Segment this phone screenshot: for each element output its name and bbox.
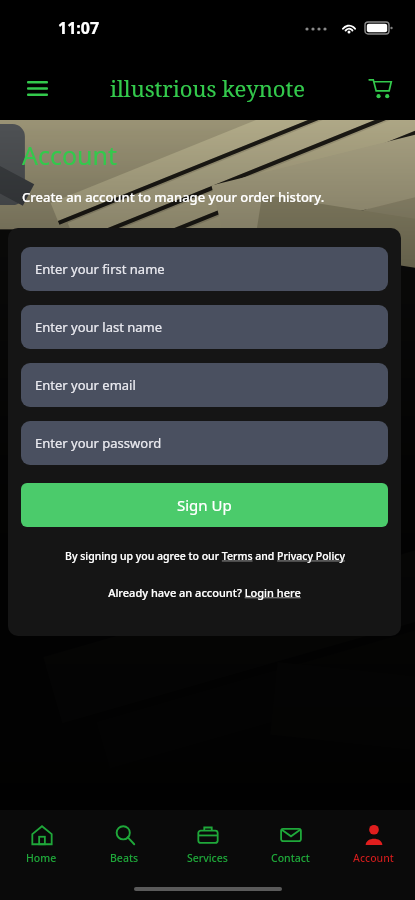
button[interactable]: Account	[332, 810, 415, 878]
staticText: Enter your email	[35, 376, 136, 394]
button[interactable]: Home	[0, 810, 83, 878]
staticText: Account	[22, 138, 118, 172]
staticText: Create an account to manage your order h…	[22, 188, 325, 206]
button[interactable]: By signing up you agree to our Terms and…	[21, 549, 388, 563]
button[interactable]: Services	[166, 810, 249, 878]
staticText: By signing up you agree to our Terms and…	[65, 549, 345, 563]
staticText: Contact	[271, 851, 310, 865]
button[interactable]: Enter your password	[21, 421, 388, 465]
button[interactable]: Contact	[249, 810, 332, 878]
staticText: Sign Up	[177, 495, 232, 515]
staticText: Already have an account? Login here	[108, 585, 301, 600]
button[interactable]: Menu	[16, 67, 58, 109]
staticText: Enter your first name	[35, 260, 165, 278]
button[interactable]: Enter your last name	[21, 305, 388, 349]
staticText: Beats	[110, 851, 139, 865]
staticText: illustrious keynote	[110, 73, 306, 103]
button[interactable]: Cart	[359, 67, 401, 109]
button[interactable]: Already have an account? Login here	[21, 585, 388, 600]
button[interactable]: Enter your first name	[21, 247, 388, 291]
staticText: Services	[187, 851, 228, 865]
staticText: Enter your password	[35, 434, 162, 452]
staticText: Enter your last name	[35, 318, 163, 336]
staticText: Home	[26, 851, 57, 865]
button[interactable]: Sign Up	[21, 483, 388, 527]
button[interactable]: Beats	[83, 810, 166, 878]
button[interactable]: Enter your email	[21, 363, 388, 407]
staticText: 11:07	[58, 17, 100, 39]
staticText: Account	[353, 851, 394, 865]
